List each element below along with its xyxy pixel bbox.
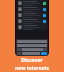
button[interactable]: Key xyxy=(44,44,47,47)
staticText: new interests xyxy=(15,65,49,72)
button[interactable]: Status xyxy=(17,0,47,6)
button[interactable]: Key xyxy=(38,40,41,43)
staticText: Discover xyxy=(21,57,43,64)
button[interactable]: Status xyxy=(17,18,47,24)
button[interactable]: Key xyxy=(17,40,20,43)
button[interactable]: Key xyxy=(32,44,35,47)
button[interactable]: Key xyxy=(23,44,26,47)
button[interactable]: Key xyxy=(34,48,37,51)
other: Status xyxy=(43,14,46,17)
button[interactable]: Key xyxy=(26,44,29,47)
button[interactable]: Status xyxy=(17,12,47,18)
button[interactable]: Key xyxy=(26,40,29,43)
button[interactable]: Send xyxy=(41,52,47,55)
button[interactable]: Key xyxy=(20,44,23,47)
other: Status xyxy=(43,20,46,23)
button[interactable]: Key xyxy=(28,48,31,51)
other: Status xyxy=(43,2,46,5)
button[interactable]: Key xyxy=(32,40,35,43)
button[interactable]: Key xyxy=(29,40,32,43)
button[interactable]: Key xyxy=(25,48,28,51)
button[interactable]: Key xyxy=(41,40,44,43)
button[interactable]: Key xyxy=(22,48,25,51)
button[interactable]: Key xyxy=(29,44,32,47)
button[interactable]: Status xyxy=(17,6,47,12)
button[interactable]: Key xyxy=(23,40,26,43)
button[interactable]: Key xyxy=(35,40,38,43)
button[interactable] xyxy=(17,24,47,30)
button[interactable]: Key xyxy=(44,40,47,43)
button[interactable]: Key xyxy=(17,44,20,47)
button[interactable]: Key xyxy=(38,44,41,47)
button[interactable]: Key xyxy=(40,48,43,51)
other: Status xyxy=(43,8,46,11)
button[interactable]: Key xyxy=(41,44,44,47)
button[interactable]: Key xyxy=(31,48,34,51)
button[interactable]: Key xyxy=(35,44,38,47)
button[interactable]: Key xyxy=(20,40,23,43)
button[interactable]: Key xyxy=(37,48,40,51)
